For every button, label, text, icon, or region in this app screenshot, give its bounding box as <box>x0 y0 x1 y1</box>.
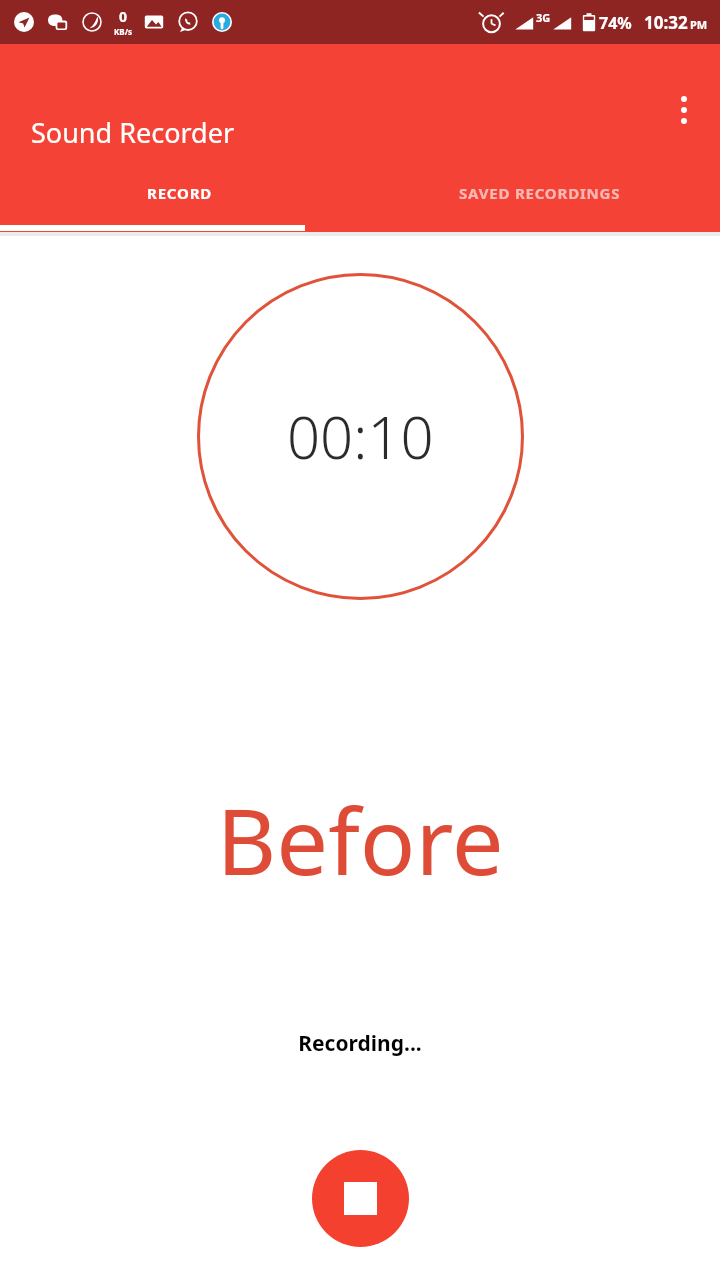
staticText: 00:10 <box>287 397 434 476</box>
staticText: Sound Recorder <box>31 114 235 151</box>
staticText: 74% <box>599 12 632 34</box>
button[interactable]: SAVED RECORDINGS <box>360 170 720 232</box>
staticText: Before <box>0 777 720 902</box>
staticText: KB/s <box>114 26 132 37</box>
staticText: 10:32 <box>644 11 688 34</box>
staticText: SAVED RECORDINGS <box>459 183 621 203</box>
button[interactable]: Stop recording <box>312 1150 409 1247</box>
button[interactable]: More options <box>660 86 708 134</box>
staticText: 0 <box>119 7 128 26</box>
staticText: Recording... <box>0 1029 720 1058</box>
button[interactable]: RECORD <box>0 170 360 232</box>
staticText: 3G <box>536 10 551 25</box>
staticText: RECORD <box>147 183 213 203</box>
staticText: PM <box>690 17 708 32</box>
